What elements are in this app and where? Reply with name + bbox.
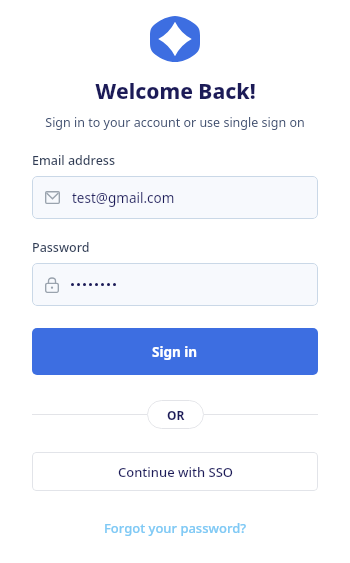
button[interactable]	[32, 263, 318, 306]
staticText: Continue with SSO	[118, 463, 233, 481]
staticText: OR	[167, 407, 185, 423]
other: App logo	[150, 16, 200, 62]
staticText: Password	[32, 239, 90, 256]
staticText: Welcome Back!	[95, 77, 256, 106]
staticText: Email address	[32, 152, 115, 169]
staticText: test@gmail.com	[72, 189, 175, 207]
button[interactable]: Forgot your password?	[98, 516, 253, 540]
staticText: Sign in	[152, 343, 198, 361]
button[interactable]: test@gmail.com	[32, 176, 318, 219]
staticText: Sign in to your account or use single si…	[45, 114, 305, 131]
button[interactable]: Sign in	[32, 328, 318, 375]
staticText: Forgot your password?	[104, 519, 247, 537]
button[interactable]: Continue with SSO	[32, 452, 318, 491]
